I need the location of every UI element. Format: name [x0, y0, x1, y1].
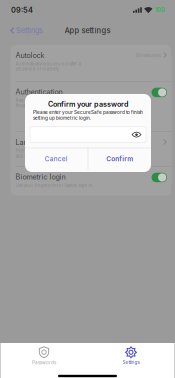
- button[interactable]: Settings: [87, 345, 174, 367]
- staticText: Autolock: [15, 51, 44, 60]
- button[interactable]: Confirm: [88, 148, 151, 169]
- button[interactable]: Cancel: [25, 148, 88, 169]
- staticText: Biometric login: [15, 172, 65, 181]
- button[interactable]: Authentication: [10, 81, 171, 131]
- staticText: 30 minutes: [135, 52, 161, 58]
- staticText: 09:54: [11, 5, 33, 14]
- staticText: Automatically logs you out after a set p…: [15, 61, 80, 72]
- staticText: Use your fingerprint or face to sign in.: [15, 183, 93, 188]
- button[interactable]: Passwords: [0, 345, 87, 367]
- staticText: 100: [155, 7, 165, 13]
- staticText: Please enter your SecureSafe password to…: [33, 110, 143, 121]
- staticText: Passwords: [32, 360, 56, 365]
- staticText: Language: [15, 138, 47, 147]
- staticText: Settings: [16, 26, 43, 35]
- staticText: Settings: [122, 360, 139, 365]
- staticText: Cancel: [45, 155, 68, 163]
- staticText: Pick the language used across the app in…: [15, 148, 82, 159]
- staticText: Authentication: [15, 87, 62, 96]
- button[interactable]: Autolock: [10, 45, 171, 81]
- staticText: App settings: [64, 26, 110, 35]
- staticText: Confirm: [106, 155, 133, 163]
- staticText: Require your password each time the app …: [15, 98, 83, 108]
- button[interactable]: Language: [10, 132, 171, 166]
- staticText: Confirm your password: [48, 100, 128, 108]
- button[interactable]: Settings: [0, 22, 43, 39]
- button[interactable]: Biometric login: [10, 166, 171, 195]
